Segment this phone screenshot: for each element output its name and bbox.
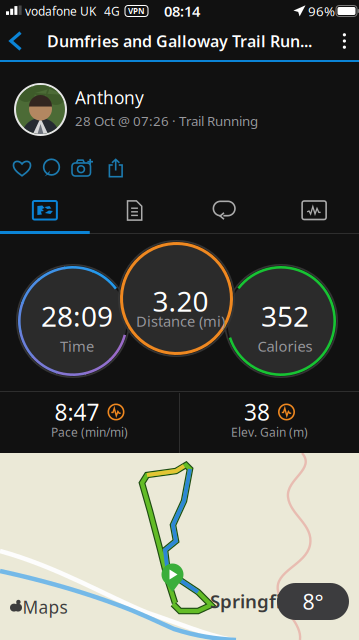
staticText: 8:47 — [54, 397, 99, 427]
button[interactable]: Share — [101, 153, 131, 183]
staticText: 4G — [104, 3, 120, 19]
button[interactable]: Comment — [37, 153, 67, 183]
button[interactable]: More options — [329, 24, 359, 58]
button[interactable]: Charts — [269, 190, 359, 231]
staticText: 28 Oct @ 07:26 · Trail Running — [75, 112, 258, 130]
staticText: Elev. Gain (m) — [231, 424, 308, 440]
button[interactable]: Like — [7, 153, 37, 183]
staticText: 96% — [308, 2, 335, 20]
staticText: vodafone UK — [25, 3, 96, 19]
staticText: Anthony — [75, 86, 144, 109]
staticText: 3.20 — [152, 282, 208, 320]
staticText: VPN — [128, 6, 145, 16]
staticText: Calories — [257, 336, 312, 356]
button[interactable]: Add photo — [68, 153, 98, 183]
button[interactable]: Back — [0, 22, 34, 60]
staticText: Maps — [22, 595, 67, 618]
button[interactable]: 8° — [277, 583, 349, 620]
staticText: 8° — [302, 587, 323, 616]
staticText: Dumfries and Galloway Trail Run... — [47, 30, 312, 52]
button[interactable]: Overview — [0, 190, 90, 231]
staticText: 38 — [244, 397, 270, 427]
button[interactable]: Laps — [179, 190, 269, 231]
staticText: 352 — [261, 297, 309, 335]
staticText: Pace (min/mi) — [51, 424, 128, 440]
staticText: Springfie — [210, 589, 292, 613]
staticText: 08:14 — [164, 1, 200, 21]
staticText: Distance (mi) — [136, 311, 225, 331]
staticText: Time — [60, 336, 94, 356]
staticText: 28:09 — [41, 297, 113, 335]
button[interactable]: Details — [90, 190, 180, 231]
